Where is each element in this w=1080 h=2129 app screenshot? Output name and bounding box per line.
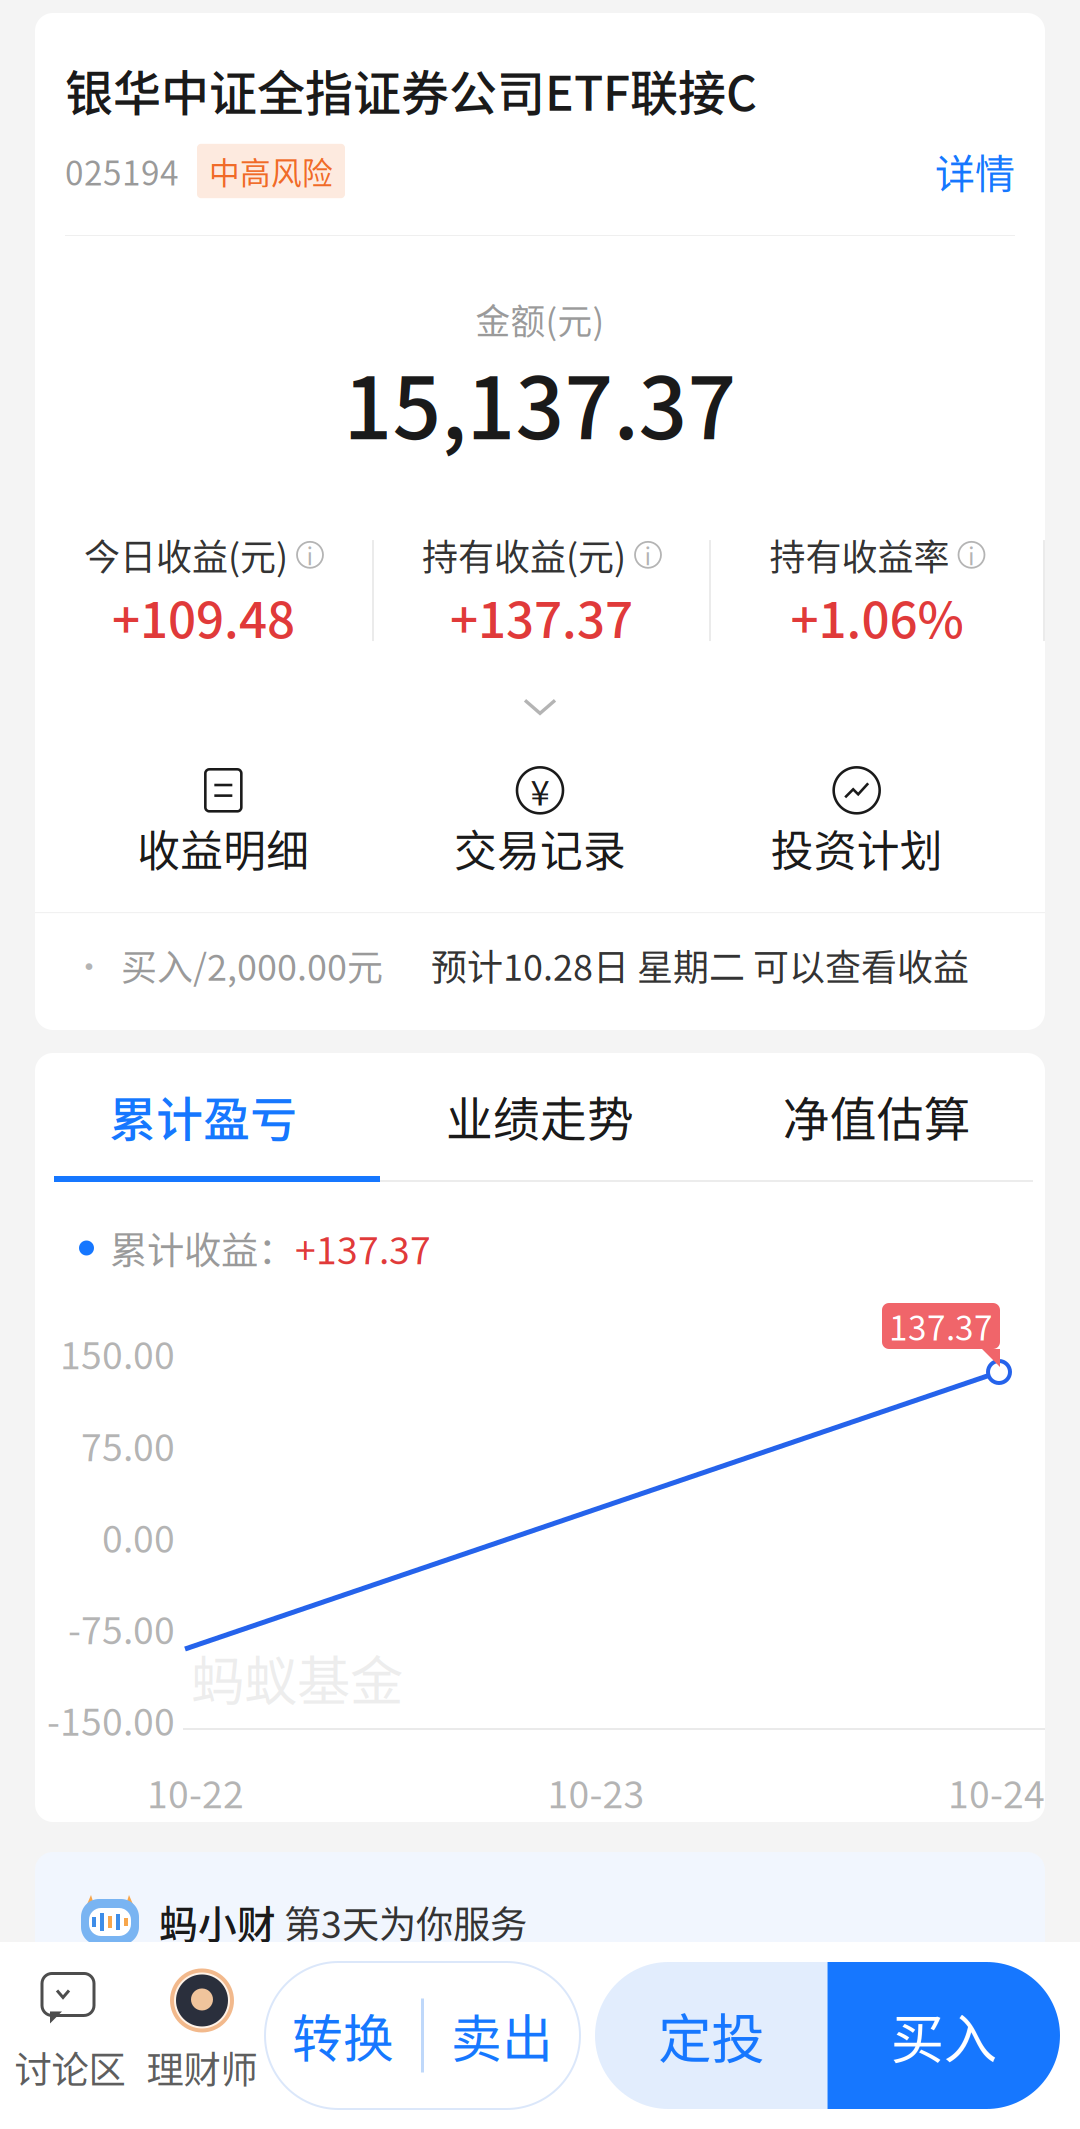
staticText: 交易记录: [454, 817, 626, 879]
staticText: 累计盈亏: [109, 1082, 297, 1130]
staticText: 预计10.28日 星期二 可以查看收益: [383, 939, 969, 991]
staticText: 转换: [292, 1999, 394, 2072]
staticText: 持有收益(元): [422, 529, 626, 581]
staticText: +109.48: [112, 581, 295, 652]
staticText: i: [644, 537, 651, 572]
button[interactable]: 投资计划: [698, 766, 1015, 879]
button[interactable]: 收益明细: [65, 766, 382, 879]
button[interactable]: 详情: [935, 142, 1015, 200]
staticText: -75.00: [68, 1601, 175, 1655]
staticText: 10-24: [948, 1765, 1045, 1819]
staticText: 收益明细: [137, 817, 309, 879]
staticText: +137.37: [295, 1221, 431, 1275]
staticText: 投资计划: [771, 817, 943, 879]
button[interactable]: 累计盈亏: [35, 1082, 372, 1130]
staticText: 详情: [935, 142, 1015, 200]
staticText: 蚂小财: [141, 1894, 276, 1950]
staticText: 第3天为你服务: [276, 1895, 527, 1949]
button[interactable]: 定投: [595, 1962, 827, 2109]
button[interactable]: 理财师: [140, 1976, 264, 2095]
staticText: i: [306, 537, 313, 572]
button[interactable]: 转换: [265, 1962, 421, 2109]
staticText: 蚂蚁基金: [191, 1639, 403, 1716]
staticText: +137.37: [450, 581, 633, 652]
button[interactable]: 买入: [827, 1962, 1060, 2109]
staticText: 买入: [891, 1997, 997, 2074]
staticText: 持有收益率: [769, 529, 949, 581]
staticText: 净值估算: [783, 1082, 971, 1130]
staticText: 理财师: [146, 2040, 257, 2095]
staticText: 讨论区: [14, 2040, 125, 2095]
staticText: 定投: [658, 1997, 764, 2074]
button[interactable]: ¥: [382, 766, 698, 879]
staticText: 今日收益(元): [84, 529, 288, 581]
button[interactable]: 卖出: [424, 1962, 580, 2109]
staticText: 卖出: [451, 1999, 553, 2072]
staticText: 75.00: [81, 1418, 175, 1472]
staticText: 15,137.37: [343, 340, 736, 464]
staticText: 137.37: [889, 1302, 993, 1350]
staticText: 150.00: [60, 1326, 175, 1380]
staticText: 10-23: [547, 1765, 644, 1819]
staticText: 业绩走势: [446, 1082, 634, 1130]
button[interactable]: 蚂小财: [0, 1822, 1080, 2070]
staticText: 买入/2,000.00元: [105, 939, 383, 991]
staticText: 中高风险: [209, 149, 333, 193]
staticText: ¥: [530, 765, 549, 815]
button[interactable]: 净值估算: [708, 1082, 1045, 1130]
staticText: •: [73, 942, 105, 988]
staticText: 银华中证全指证券公司ETF联接C: [65, 55, 757, 101]
staticText: 金额(元): [475, 294, 604, 344]
staticText: 025194: [65, 147, 179, 195]
button[interactable]: 讨论区: [0, 1976, 140, 2095]
staticText: i: [968, 537, 975, 572]
button[interactable]: 业绩走势: [372, 1082, 708, 1130]
staticText: 0.00: [102, 1509, 175, 1564]
staticText: +1.06%: [790, 581, 963, 652]
staticText: -150.00: [47, 1692, 175, 1747]
staticText: 累计收益：: [94, 1221, 295, 1275]
staticText: 10-22: [147, 1765, 244, 1819]
